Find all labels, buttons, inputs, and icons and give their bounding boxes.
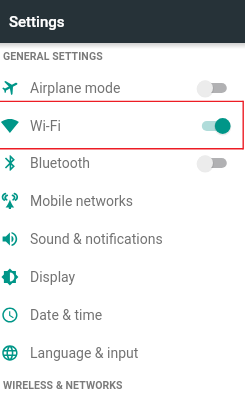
button[interactable]: Language & input xyxy=(0,334,245,372)
staticText: Settings xyxy=(9,13,65,31)
staticText: Wi-Fi xyxy=(30,118,61,134)
staticText: Display xyxy=(30,269,76,285)
staticText: WIRELESS & NETWORKS xyxy=(3,379,123,391)
staticText: Date & time xyxy=(30,307,103,323)
staticText: Mobile networks xyxy=(30,193,134,209)
button[interactable]: Sound & notifications xyxy=(0,220,245,258)
button[interactable]: Wi-Fi xyxy=(0,107,245,145)
staticText: Airplane mode xyxy=(30,80,121,96)
staticText: Sound & notifications xyxy=(30,231,163,247)
button[interactable]: Mobile networks xyxy=(0,182,245,220)
button[interactable]: Airplane mode xyxy=(0,69,245,107)
button[interactable]: Date & time xyxy=(0,296,245,334)
button[interactable]: Display xyxy=(0,258,245,296)
staticText: Language & input xyxy=(30,345,139,361)
staticText: Bluetooth xyxy=(30,155,90,171)
staticText: GENERAL SETTINGS xyxy=(3,50,103,62)
button[interactable]: Settings xyxy=(0,0,245,43)
button[interactable]: Bluetooth xyxy=(0,144,245,182)
